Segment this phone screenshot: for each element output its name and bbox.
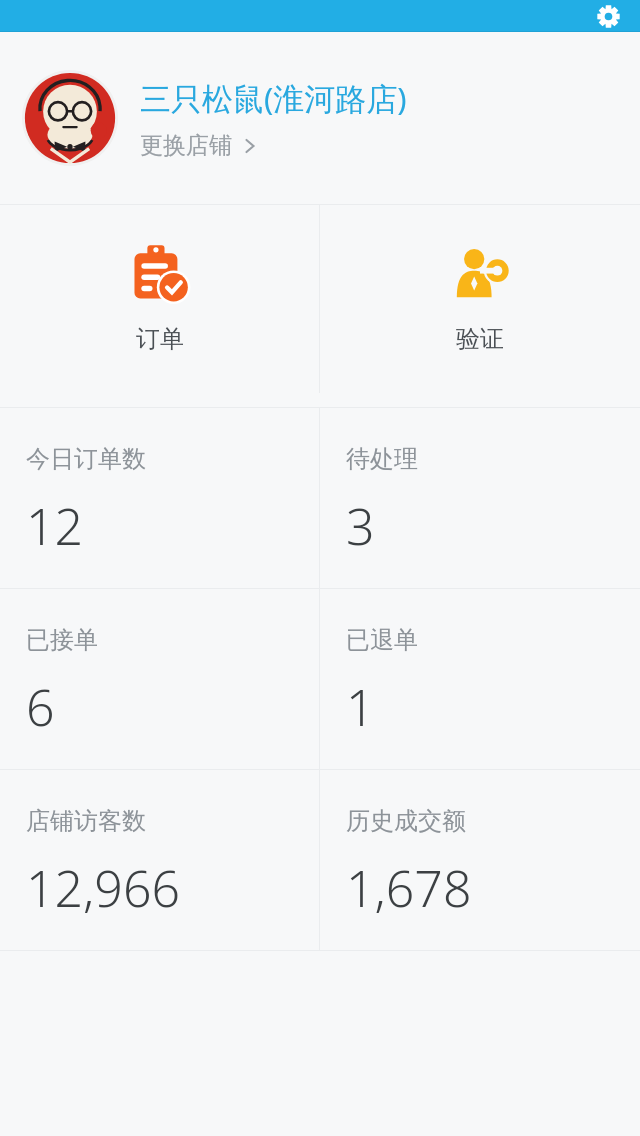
staticText: 更换店铺 (140, 131, 232, 160)
button[interactable]: 待处理 (320, 408, 640, 588)
button[interactable]: 验证 (320, 205, 640, 393)
staticText: 1,678 (346, 854, 472, 922)
button[interactable]: 订单 (0, 205, 319, 393)
button[interactable]: 今日订单数 (0, 408, 319, 588)
staticText: 今日订单数 (26, 444, 146, 474)
button[interactable]: 已退单 (320, 589, 640, 769)
staticText: 历史成交额 (346, 806, 466, 836)
button[interactable]: 历史成交额 (320, 770, 640, 950)
button[interactable]: 三只松鼠(淮河路店) (0, 32, 640, 204)
staticText: 12,966 (26, 854, 180, 922)
staticText: 1 (346, 673, 375, 741)
staticText: 已退单 (346, 625, 418, 655)
staticText: 12 (26, 492, 84, 560)
staticText: 验证 (456, 324, 504, 354)
staticText: 3 (346, 492, 375, 560)
staticText: 店铺访客数 (26, 806, 146, 836)
button[interactable]: 已接单 (0, 589, 319, 769)
staticText: 待处理 (346, 444, 418, 474)
staticText: 订单 (136, 324, 184, 354)
button[interactable]: Settings (586, 0, 630, 32)
staticText: 6 (26, 673, 55, 741)
staticText: 三只松鼠(淮河路店) (140, 77, 407, 119)
staticText: 已接单 (26, 625, 98, 655)
button[interactable]: 店铺访客数 (0, 770, 319, 950)
